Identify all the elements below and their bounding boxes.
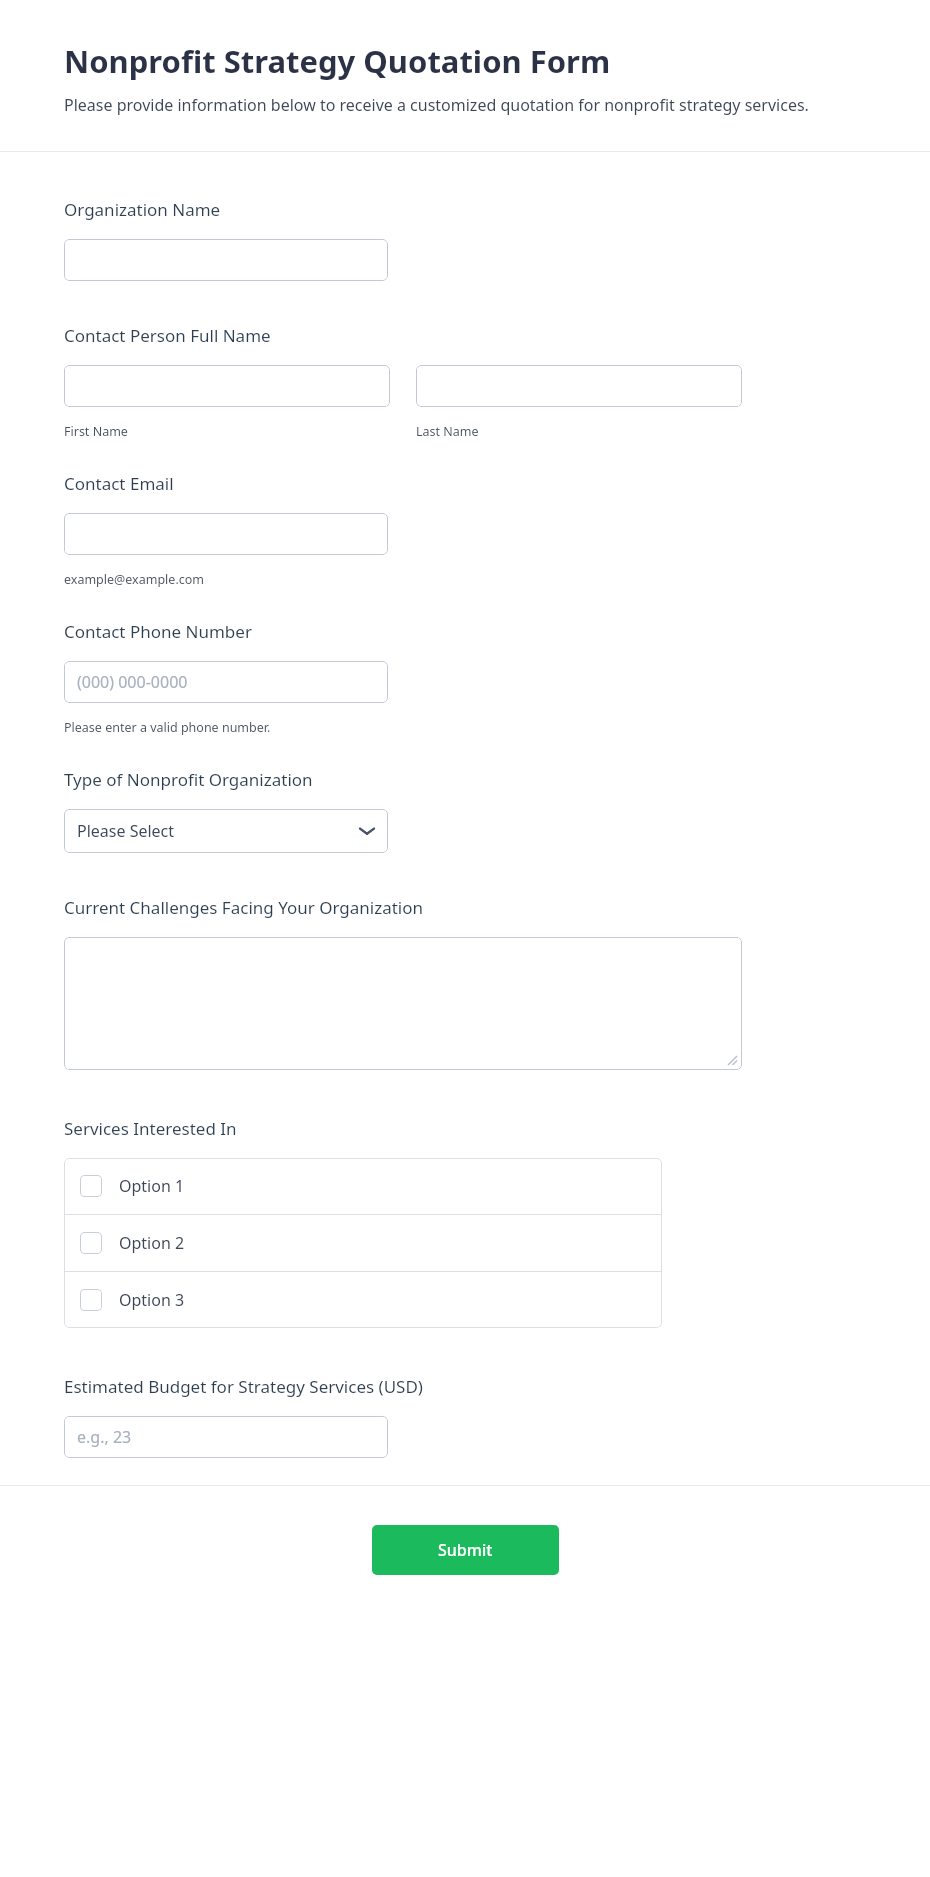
staticText: First Name (64, 423, 128, 440)
staticText: (000) 000-0000 (77, 671, 188, 693)
staticText: Please Select (77, 820, 175, 842)
staticText: Option 3 (119, 1289, 185, 1311)
staticText: Option 2 (119, 1232, 185, 1254)
button[interactable]: Option 3 (64, 1272, 662, 1328)
button[interactable]: Current Challenges Facing Your Organizat… (64, 937, 742, 1070)
button[interactable]: First Name (64, 365, 390, 407)
staticText: Nonprofit Strategy Quotation Form (64, 40, 611, 82)
staticText: example@example.com (64, 571, 204, 588)
button[interactable]: Contact Email (64, 513, 388, 555)
staticText: Submit (438, 1539, 493, 1561)
staticText: Services Interested In (64, 1117, 237, 1140)
button[interactable]: Last Name (416, 365, 742, 407)
button[interactable]: Option 2 (64, 1215, 662, 1271)
staticText: Contact Email (64, 472, 174, 495)
button[interactable]: Contact Phone Number (64, 661, 388, 703)
staticText: Please enter a valid phone number. (64, 719, 271, 736)
staticText: Contact Person Full Name (64, 324, 271, 347)
button[interactable]: Estimated Budget (64, 1416, 388, 1458)
staticText: Please provide information below to rece… (64, 94, 809, 116)
staticText: e.g., 23 (77, 1426, 132, 1448)
staticText: Option 1 (119, 1175, 185, 1197)
staticText: Estimated Budget for Strategy Services (… (64, 1375, 423, 1398)
staticText: Organization Name (64, 198, 221, 221)
staticText: Last Name (416, 423, 479, 440)
button[interactable]: Organization Name (64, 239, 388, 281)
staticText: Current Challenges Facing Your Organizat… (64, 896, 424, 919)
button[interactable]: Submit (372, 1525, 559, 1575)
button[interactable]: Option 1 (64, 1158, 662, 1214)
staticText: Type of Nonprofit Organization (64, 768, 313, 791)
staticText: Contact Phone Number (64, 620, 252, 643)
button[interactable]: Type of Nonprofit Organization (64, 809, 388, 853)
